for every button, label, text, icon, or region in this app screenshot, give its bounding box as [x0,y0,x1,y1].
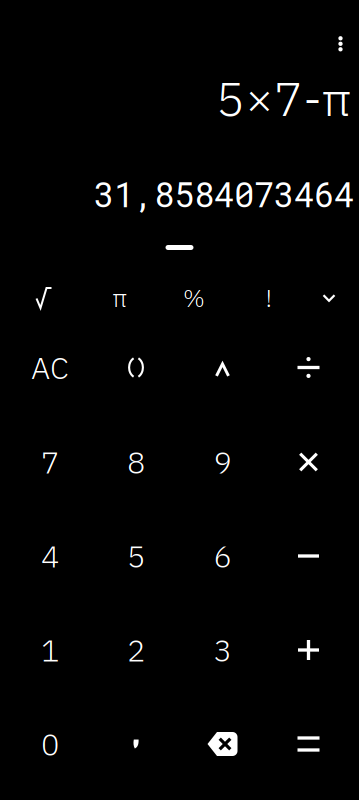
button[interactable]: 5 [93,513,179,599]
button[interactable]: More options [325,29,355,59]
button[interactable]: Decimal comma [93,701,179,787]
staticText: 8 [127,442,145,482]
button[interactable]: π [84,273,156,323]
staticText: 7 [41,442,59,482]
button[interactable]: % [158,273,230,323]
staticText: 1 [41,630,59,670]
button[interactable]: Subtract [265,513,351,599]
staticText: 5×7-π [216,67,351,129]
button[interactable]: Multiply [265,419,351,505]
button[interactable]: 0 [7,701,93,787]
staticText: % [183,282,205,314]
button[interactable]: Square root [8,273,80,323]
staticText: π [112,282,127,314]
staticText: 0 [41,724,59,764]
staticText: 3 [213,630,231,670]
staticText: 31,8584073464 [94,171,354,216]
button[interactable]: Power [179,332,265,402]
staticText: 4 [41,536,59,576]
button[interactable]: Add [265,607,351,693]
staticText: 6 [213,536,231,576]
button[interactable]: ! [233,273,305,323]
button[interactable]: 3 [179,607,265,693]
button[interactable]: 2 [93,607,179,693]
button[interactable]: 9 [179,419,265,505]
staticText: 9 [213,442,231,482]
button[interactable]: Equals [265,701,351,787]
button[interactable]: Parentheses [93,332,179,402]
button[interactable]: 7 [7,419,93,505]
staticText: 2 [127,630,145,670]
button[interactable]: 6 [179,513,265,599]
button[interactable]: 1 [7,607,93,693]
staticText: ! [265,282,272,314]
staticText: AC [31,348,69,387]
button[interactable]: 8 [93,419,179,505]
button[interactable]: Divide [265,332,351,402]
button[interactable]: Delete [179,701,265,787]
button[interactable]: 4 [7,513,93,599]
button[interactable]: Collapse [305,273,353,323]
button[interactable]: AC [7,332,93,402]
staticText: 5 [127,536,145,576]
